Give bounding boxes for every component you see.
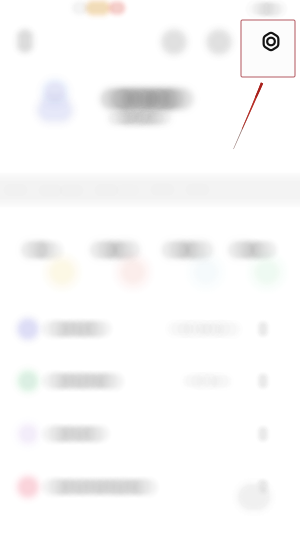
button[interactable]	[0, 0, 300, 533]
button[interactable]	[0, 0, 300, 533]
button[interactable]: Back	[0, 0, 300, 533]
button[interactable]: Settings	[241, 20, 295, 77]
button[interactable]	[0, 0, 300, 533]
button[interactable]	[0, 0, 300, 533]
button[interactable]	[0, 0, 300, 533]
button[interactable]	[0, 0, 300, 533]
button[interactable]	[0, 0, 300, 533]
button[interactable]: Search	[0, 0, 300, 533]
button[interactable]	[0, 0, 300, 533]
button[interactable]	[0, 0, 300, 533]
button[interactable]	[0, 0, 300, 533]
button[interactable]: Scan	[0, 0, 300, 533]
